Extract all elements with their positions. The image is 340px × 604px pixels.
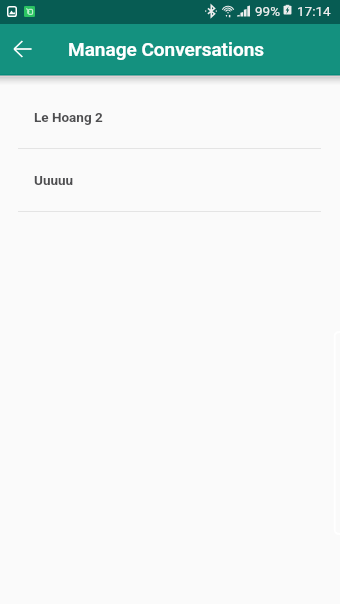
staticText: 99% xyxy=(255,3,281,19)
staticText: Manage Conversations xyxy=(68,38,265,60)
button[interactable]: Le Hoang 2 xyxy=(0,86,340,149)
staticText: Le Hoang 2 xyxy=(34,109,103,125)
button[interactable]: Uuuuu xyxy=(0,149,340,212)
staticText: 17:14 xyxy=(297,3,331,19)
staticText: Uuuuu xyxy=(34,172,74,188)
button[interactable]: Back xyxy=(0,26,46,72)
